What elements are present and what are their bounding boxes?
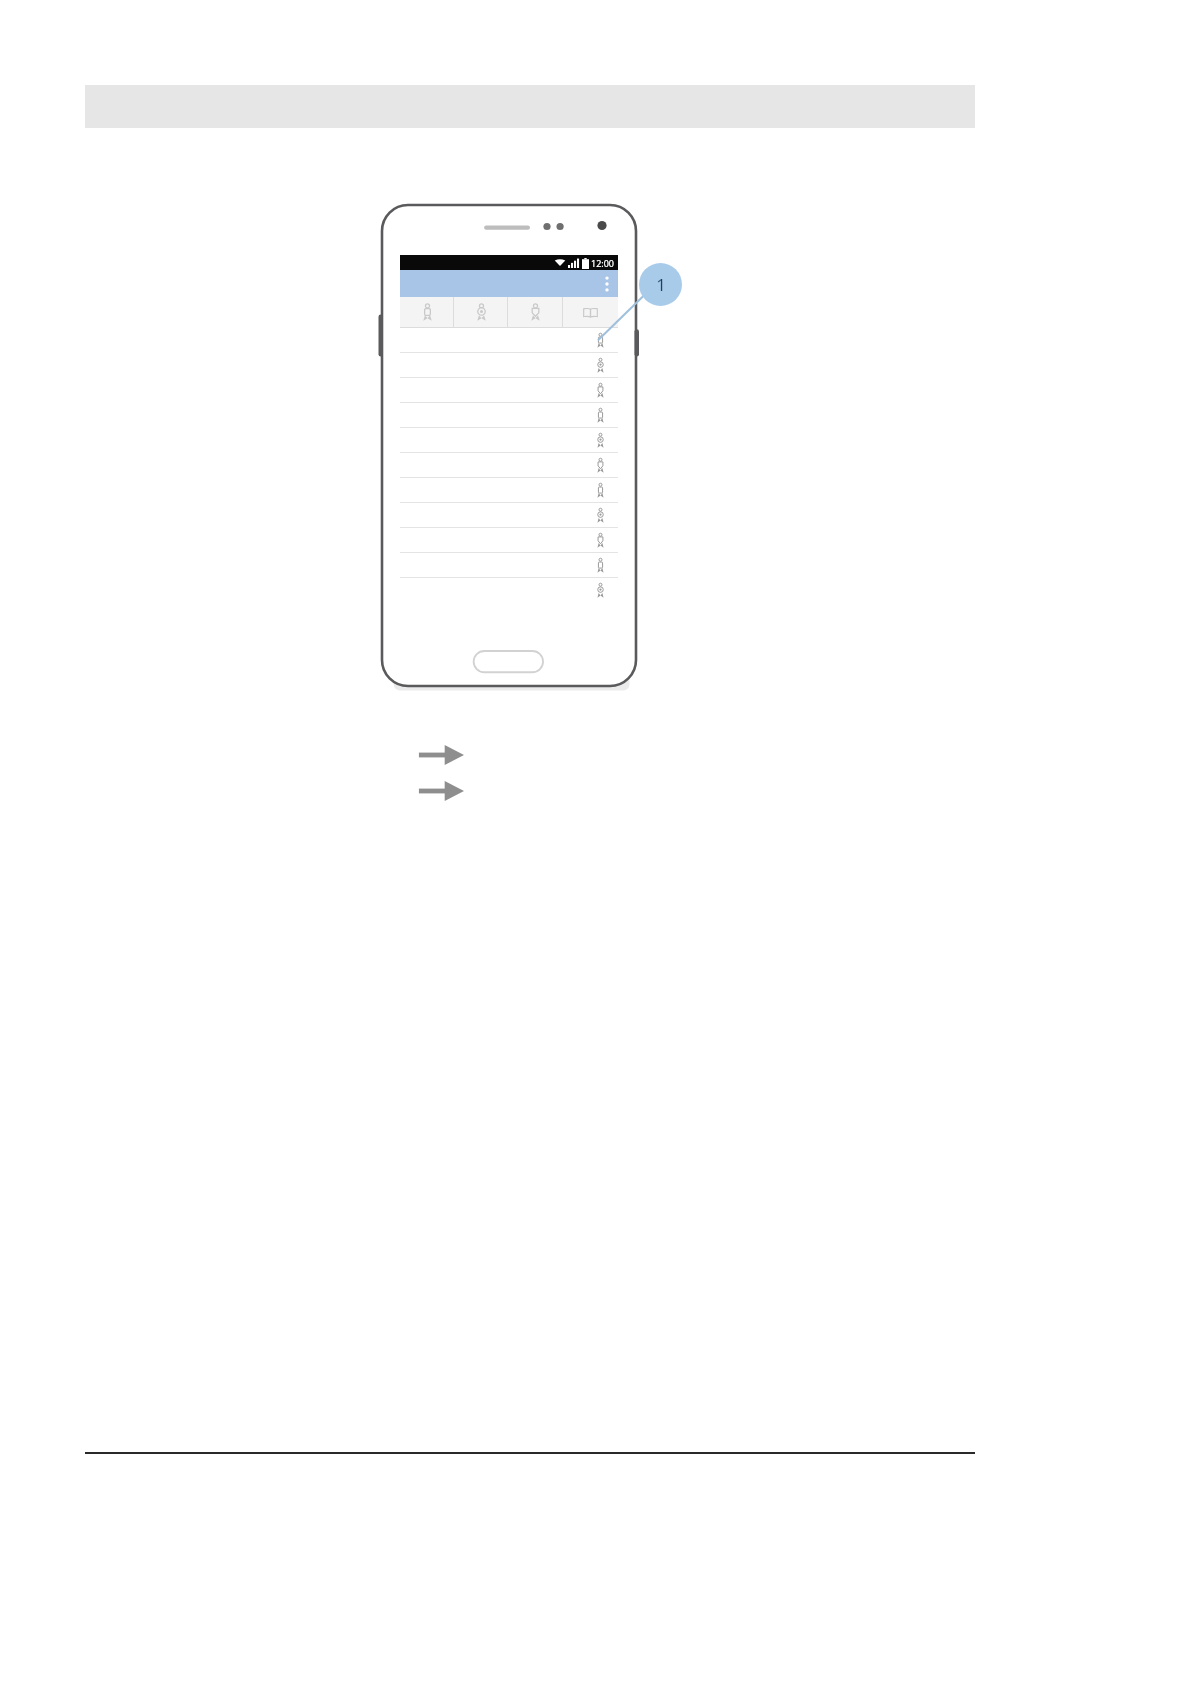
staticText: 1 [656, 273, 666, 296]
button[interactable] [400, 403, 618, 428]
button[interactable]: Medal category 1 [400, 297, 454, 327]
button[interactable] [400, 578, 618, 603]
button[interactable]: More options [601, 272, 613, 296]
button[interactable]: Medal category 2 [454, 297, 508, 327]
staticText: 12:00 [591, 257, 615, 269]
button[interactable] [400, 353, 618, 378]
button[interactable] [400, 428, 618, 453]
button[interactable] [400, 503, 618, 528]
button[interactable] [400, 378, 618, 403]
button[interactable] [400, 553, 618, 578]
button[interactable]: Dictionary [563, 297, 618, 327]
button[interactable] [400, 328, 618, 353]
button[interactable] [400, 478, 618, 503]
button[interactable] [400, 453, 618, 478]
button[interactable]: Medal category 3 [508, 297, 563, 327]
button[interactable] [400, 528, 618, 553]
